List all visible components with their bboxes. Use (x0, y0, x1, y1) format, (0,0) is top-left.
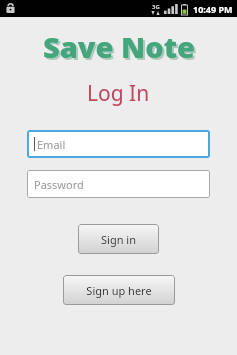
button[interactable]: Sign up here (63, 275, 175, 305)
button[interactable]: Email (27, 130, 210, 158)
button[interactable]: Password (27, 170, 210, 198)
staticText: Save Note (43, 27, 195, 66)
button[interactable]: Sign in (78, 224, 159, 254)
staticText: Sign in (101, 232, 136, 247)
staticText: 10:49 PM (193, 3, 233, 15)
staticText: 3G (152, 3, 160, 11)
staticText: Sign up here (86, 283, 152, 298)
staticText: Password (34, 177, 84, 192)
staticText: Log In (87, 79, 150, 108)
staticText: Email (37, 137, 66, 152)
staticText: Save Note (45, 29, 197, 68)
other: Secure (5, 3, 16, 14)
